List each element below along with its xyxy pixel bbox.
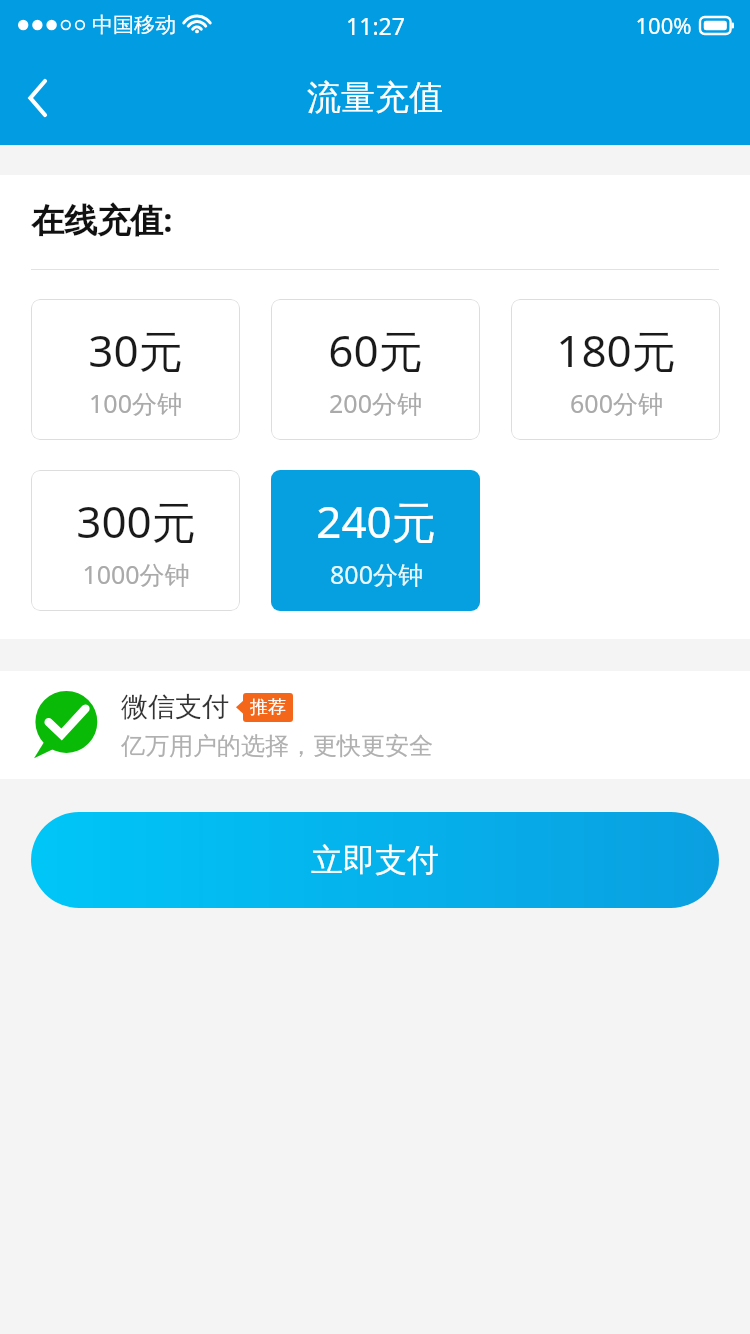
staticText: 30元 xyxy=(88,320,183,380)
staticText: 100% xyxy=(635,10,692,40)
staticText: 11:27 xyxy=(346,10,405,41)
staticText: 中国移动 xyxy=(92,12,176,38)
button[interactable]: 立即支付 xyxy=(31,812,719,908)
button[interactable]: 180元 xyxy=(511,299,720,440)
staticText: 240元 xyxy=(316,491,436,551)
button[interactable]: 微信支付 xyxy=(0,671,750,779)
button[interactable]: 240元 xyxy=(271,470,480,611)
staticText: 60元 xyxy=(328,320,423,380)
staticText: 100分钟 xyxy=(89,386,182,420)
staticText: 800分钟 xyxy=(330,557,423,591)
staticText: 立即支付 xyxy=(311,840,439,880)
staticText: 流量充值 xyxy=(307,76,443,119)
staticText: 亿万用户的选择，更快更安全 xyxy=(121,731,433,761)
button[interactable]: Back xyxy=(0,60,76,136)
staticText: 180元 xyxy=(556,320,676,380)
staticText: 1000分钟 xyxy=(82,557,190,591)
staticText: 300元 xyxy=(76,491,196,551)
button[interactable]: 60元 xyxy=(271,299,480,440)
staticText: 推荐 xyxy=(250,696,286,719)
staticText: 600分钟 xyxy=(570,386,663,420)
button[interactable]: 300元 xyxy=(31,470,240,611)
staticText: 微信支付 xyxy=(121,690,229,724)
staticText: 200分钟 xyxy=(329,386,422,420)
button[interactable]: 30元 xyxy=(31,299,240,440)
staticText: 在线充值: xyxy=(31,197,173,242)
